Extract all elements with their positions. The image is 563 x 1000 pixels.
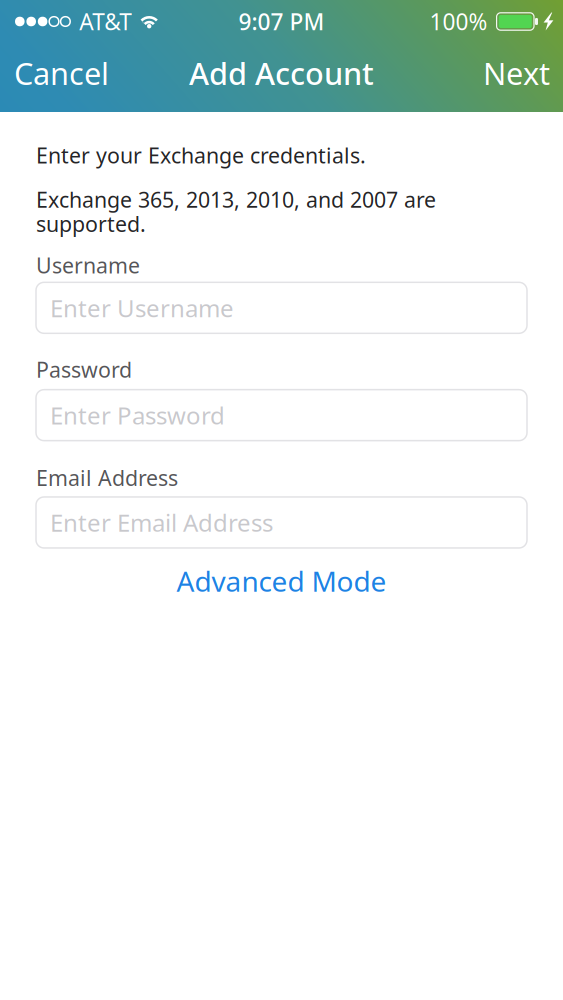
staticText: Enter your Exchange credentials. (36, 141, 366, 169)
staticText: Password (36, 355, 132, 384)
button[interactable]: Enter Username (36, 282, 527, 333)
staticText: Enter Email Address (50, 506, 273, 538)
button[interactable]: Cancel (0, 38, 123, 108)
button[interactable]: Enter Password (36, 390, 527, 441)
staticText: Cancel (14, 53, 109, 93)
button[interactable]: Enter Email Address (36, 497, 527, 548)
staticText: 9:07 PM (238, 6, 324, 36)
staticText: Username (36, 251, 140, 279)
staticText: Exchange 365, 2013, 2010, and 2007 are s… (36, 185, 436, 238)
staticText: 100% (430, 6, 488, 36)
staticText: Next (483, 53, 550, 93)
staticText: Email Address (36, 464, 178, 492)
button[interactable]: Advanced Mode (164, 562, 398, 600)
staticText: Enter Password (50, 399, 225, 431)
button[interactable]: Next (470, 38, 563, 108)
staticText: Add Account (189, 53, 374, 93)
staticText: Advanced Mode (176, 562, 386, 600)
staticText: Enter Username (50, 292, 234, 324)
staticText: AT&T (79, 6, 132, 36)
